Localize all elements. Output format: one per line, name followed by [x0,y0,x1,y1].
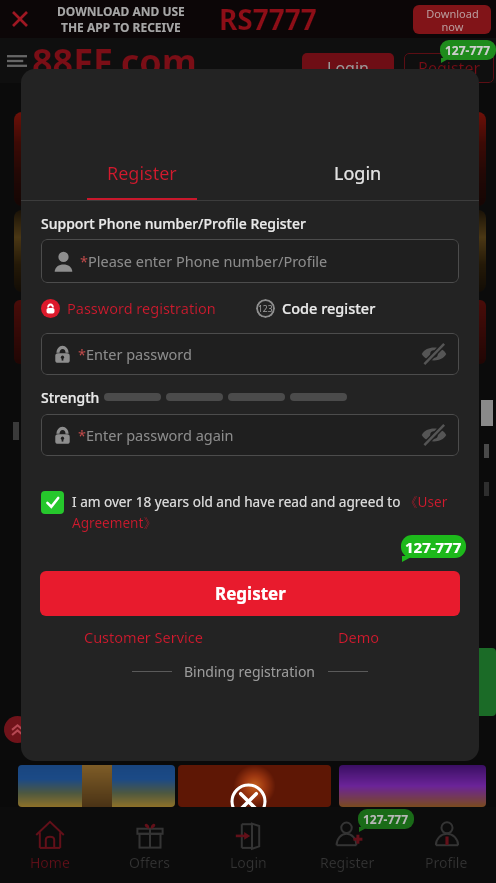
button[interactable]: *Enter password [41,333,459,375]
staticText: 123 [258,303,273,315]
staticText: Register [215,582,286,605]
staticText: *Please enter Phone number/Profile [80,251,328,271]
button[interactable]: Close banner [8,7,32,31]
staticText: *Enter password [78,344,192,364]
button[interactable]: Profile [397,808,496,883]
button[interactable]: Home [0,808,100,883]
button[interactable]: Menu [5,49,29,73]
button[interactable]: Demo [259,626,459,648]
staticText: *Enter password again [78,425,234,445]
staticText: RS7777 [219,0,317,38]
staticText: Login [230,853,267,872]
button[interactable] [339,765,486,807]
button[interactable]: *Enter password again [41,414,459,456]
staticText: I am over 18 years old and have read and… [72,492,459,533]
staticText: 127-777 [363,811,409,827]
button[interactable]: Register [298,808,397,883]
staticText: Customer Service [84,627,203,647]
staticText: Login [334,161,382,186]
staticText: Home [30,853,70,872]
staticText: 127-777 [445,42,491,58]
button[interactable] [14,300,486,364]
button[interactable] [178,765,331,807]
staticText: 127-777 [405,537,462,557]
staticText: Login [327,57,369,79]
staticText: Register [107,161,177,186]
button[interactable]: Login [302,53,394,83]
button[interactable]: Password registration [41,298,216,318]
button[interactable]: Register [40,571,460,616]
button[interactable]: Offers [100,808,199,883]
staticText: DOWNLOAD AND USE [57,3,185,19]
staticText: Support Phone number/Profile Register [41,214,306,233]
button[interactable]: Register [55,153,229,193]
button[interactable] [18,765,175,807]
staticText: 88FF.com [32,37,197,82]
staticText: Password registration [67,298,216,318]
staticText: Register [418,57,481,79]
button[interactable]: Back to top [4,716,31,743]
staticText: Strength [41,388,100,406]
button[interactable]: Login [199,808,298,883]
button[interactable] [14,210,486,292]
button[interactable] [470,648,496,716]
button[interactable]: Toggle password visibility [421,341,447,367]
button[interactable]: Toggle password visibility [421,422,447,448]
button[interactable]: *Please enter Phone number/Profile [41,239,459,283]
button[interactable] [41,491,64,514]
button[interactable]: Close dialog [230,783,267,820]
staticText: Code register [282,298,376,318]
button[interactable]: Register [404,53,494,83]
staticText: Binding registration [184,662,316,681]
button[interactable]: Download now [413,5,491,34]
staticText: Demo [338,627,380,647]
button[interactable] [14,112,486,206]
staticText: THE APP TO RECEIVE [61,19,181,35]
staticText: Register [320,853,375,872]
button[interactable]: 123 [256,298,376,318]
staticText: Download now [426,6,479,34]
staticText: Profile [425,853,468,872]
button[interactable]: Customer Service [43,626,243,648]
button[interactable]: Login [271,153,445,193]
staticText: Offers [129,853,170,872]
